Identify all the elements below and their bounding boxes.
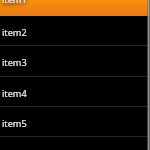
button[interactable]: item3 xyxy=(0,46,150,76)
button[interactable]: item4 xyxy=(0,77,150,107)
staticText: item2 xyxy=(2,26,27,39)
button[interactable]: item1 xyxy=(0,0,150,16)
staticText: item1 xyxy=(2,0,27,6)
button[interactable]: item6 xyxy=(0,137,150,150)
staticText: item5 xyxy=(2,117,27,130)
button[interactable]: item5 xyxy=(0,107,150,137)
staticText: item4 xyxy=(2,87,27,100)
staticText: item3 xyxy=(2,56,27,69)
button[interactable]: item2 xyxy=(0,16,150,46)
